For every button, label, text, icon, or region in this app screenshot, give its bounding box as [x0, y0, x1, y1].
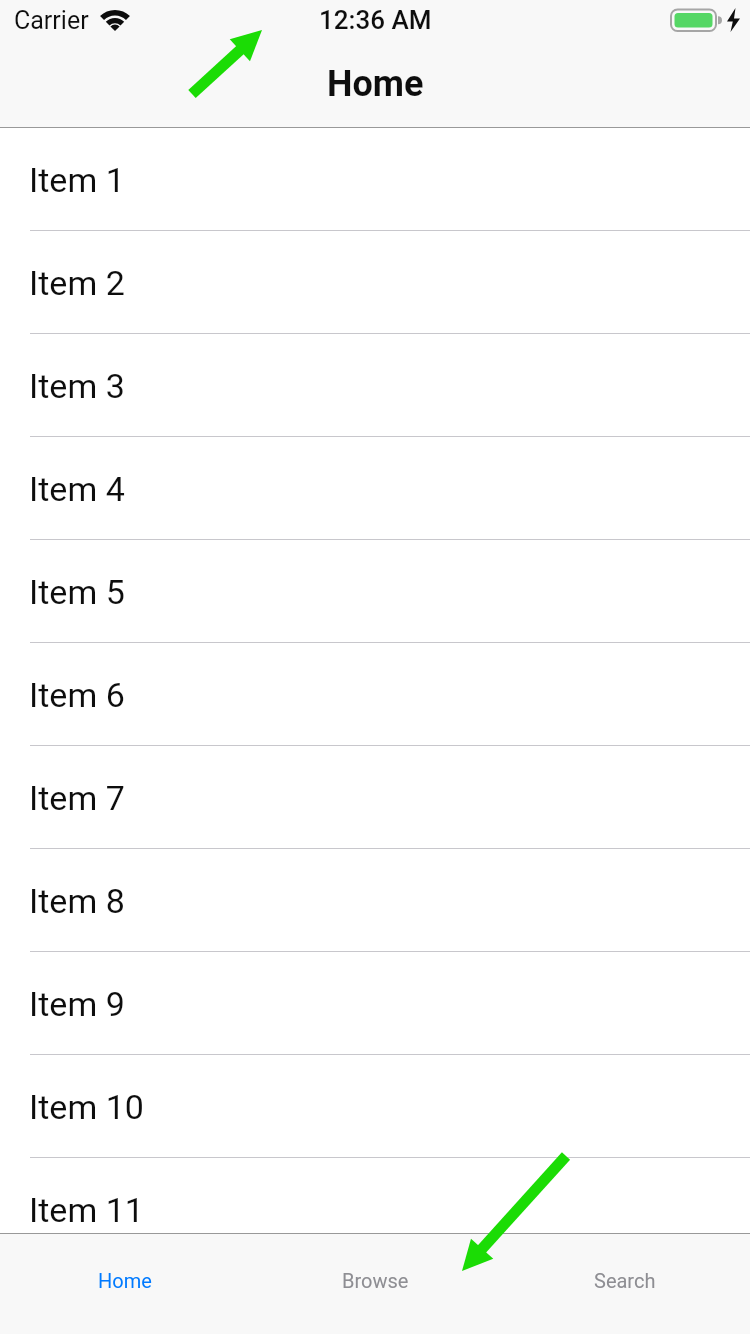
staticText: Item 7: [29, 778, 125, 818]
staticText: Item 6: [29, 675, 125, 715]
staticText: Item 10: [29, 1087, 144, 1127]
button[interactable]: Search: [500, 1234, 750, 1334]
staticText: Item 2: [29, 263, 125, 303]
button[interactable]: Item 6: [0, 643, 750, 746]
button[interactable]: Item 9: [0, 952, 750, 1055]
staticText: Carrier: [14, 6, 89, 35]
staticText: Item 9: [29, 984, 125, 1024]
staticText: Item 1: [29, 160, 125, 200]
button[interactable]: Home: [0, 1234, 250, 1334]
button[interactable]: Item 10: [0, 1055, 750, 1158]
staticText: Home: [327, 63, 424, 105]
button[interactable]: Item 8: [0, 849, 750, 952]
staticText: Item 3: [29, 366, 125, 406]
button[interactable]: Item 5: [0, 540, 750, 643]
staticText: Search: [594, 1269, 656, 1292]
button[interactable]: Item 3: [0, 334, 750, 437]
staticText: Browse: [342, 1269, 409, 1292]
staticText: Item 11: [29, 1190, 144, 1230]
staticText: 12:36 AM: [319, 5, 432, 35]
button[interactable]: Item 7: [0, 746, 750, 849]
staticText: Item 5: [29, 572, 125, 612]
staticText: Home: [98, 1269, 152, 1292]
staticText: Item 8: [29, 881, 125, 921]
staticText: Item 4: [29, 469, 125, 509]
button[interactable]: Item 4: [0, 437, 750, 540]
button[interactable]: Browse: [250, 1234, 500, 1334]
button[interactable]: Item 2: [0, 231, 750, 334]
button[interactable]: Item 1: [0, 128, 750, 231]
button[interactable]: Item 11: [0, 1158, 750, 1261]
